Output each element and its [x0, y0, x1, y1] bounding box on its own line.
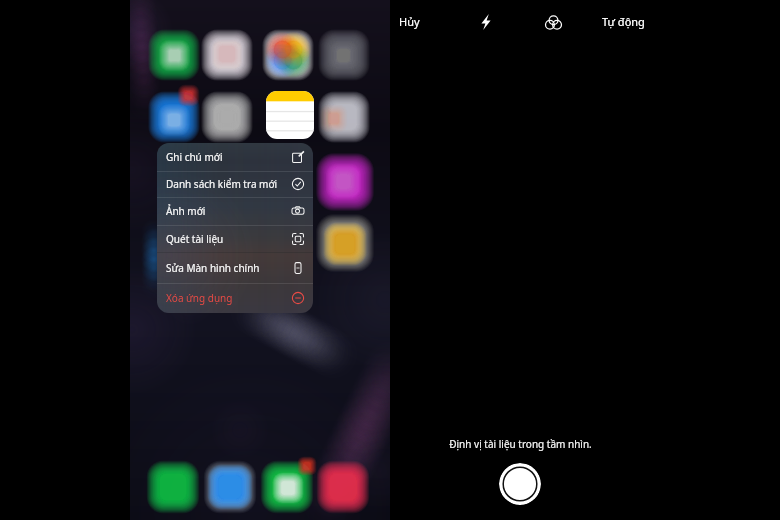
staticText: Sửa Màn hình chính [166, 261, 260, 275]
staticText: Ảnh mới [166, 204, 206, 218]
staticText: Tự động [602, 14, 645, 29]
button[interactable]: Danh sách kiểm tra mới [157, 171, 313, 197]
button[interactable]: Ảnh mới [157, 197, 313, 225]
staticText: Hủy [399, 14, 420, 29]
button[interactable]: Ghi chú mới [157, 143, 313, 171]
button[interactable]: Xóa ứng dụng [157, 283, 313, 313]
button[interactable]: Notes [266, 91, 314, 139]
button[interactable]: Tự động [596, 8, 651, 35]
button[interactable]: Sửa Màn hình chính [157, 252, 313, 283]
button[interactable]: Hủy [393, 8, 426, 35]
staticText: Định vị tài liệu trong tầm nhìn. [449, 437, 592, 451]
button[interactable]: Quét tài liệu [157, 225, 313, 252]
button[interactable]: Capture [499, 463, 541, 505]
staticText: Danh sách kiểm tra mới [166, 177, 278, 191]
button[interactable]: Flash [473, 9, 499, 35]
staticText: Quét tài liệu [166, 232, 224, 246]
staticText: Xóa ứng dụng [166, 291, 233, 305]
button[interactable]: Filters [540, 9, 567, 36]
staticText: Ghi chú mới [166, 150, 223, 164]
